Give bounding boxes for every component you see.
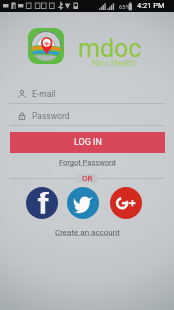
- button[interactable]: Sign in with Twitter: [67, 187, 99, 219]
- staticText: 65%: [119, 3, 131, 10]
- staticText: Password: [32, 111, 70, 121]
- button[interactable]: Sign in with Facebook: [26, 187, 58, 219]
- staticText: OR: [82, 174, 93, 183]
- button[interactable]: Create an account: [55, 228, 120, 237]
- button[interactable]: Password: [18, 110, 70, 121]
- button[interactable]: Forgot Password: [59, 158, 116, 167]
- button[interactable]: LOG IN: [10, 132, 165, 153]
- staticText: 4:21 PM: [137, 1, 165, 10]
- staticText: LOG IN: [74, 137, 102, 148]
- staticText: mdoc: [78, 34, 142, 63]
- staticText: E-mail: [32, 89, 56, 99]
- staticText: Navi Health: [92, 58, 136, 68]
- button[interactable]: E-mail: [18, 88, 56, 99]
- button[interactable]: Sign in with Google Plus: [110, 187, 142, 219]
